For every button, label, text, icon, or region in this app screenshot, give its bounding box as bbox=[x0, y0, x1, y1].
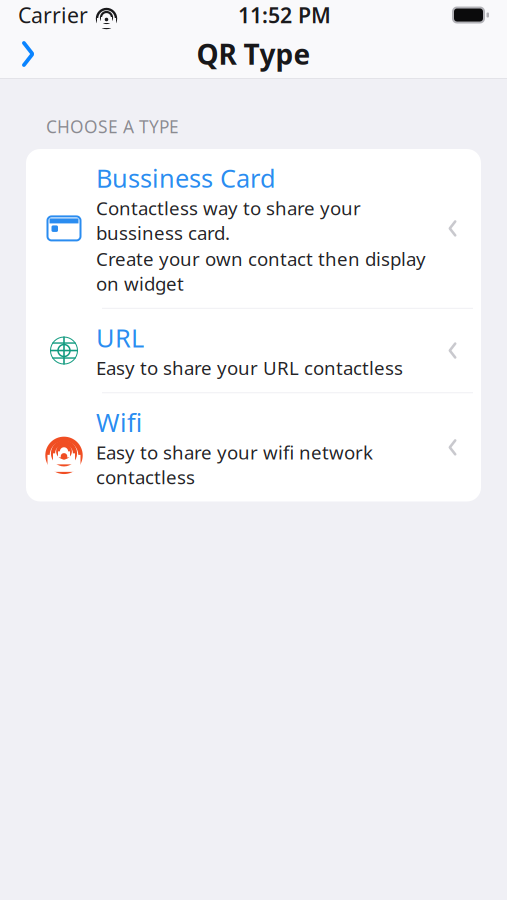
staticText: URL bbox=[96, 321, 144, 354]
button[interactable]: Bussiness Card bbox=[26, 149, 481, 308]
button[interactable]: Wifi bbox=[26, 393, 481, 501]
staticText: Contactless way to share your bussiness … bbox=[96, 196, 361, 245]
button[interactable]: URL bbox=[26, 309, 481, 392]
staticText: Easy to share your wifi network contactl… bbox=[96, 440, 373, 489]
button[interactable]: Back bbox=[4, 30, 52, 78]
staticText: Carrier bbox=[18, 1, 88, 29]
staticText: 11:52 PM bbox=[238, 1, 331, 29]
staticText: Create your own contact then display on … bbox=[96, 246, 426, 296]
staticText: Bussiness Card bbox=[96, 161, 276, 195]
staticText: QR Type bbox=[196, 35, 310, 73]
staticText: Easy to share your URL contactless bbox=[96, 355, 403, 380]
staticText: CHOOSE A TYPE bbox=[46, 115, 179, 138]
staticText: Wifi bbox=[96, 405, 142, 439]
